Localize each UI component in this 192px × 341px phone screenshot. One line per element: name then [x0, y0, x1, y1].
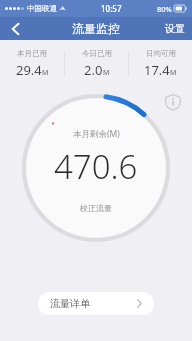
button[interactable]: 流量详单: [38, 292, 154, 315]
staticText: 日均可用: [146, 49, 176, 58]
button[interactable]: 设置: [165, 17, 185, 40]
staticText: 470.6: [54, 144, 138, 189]
button[interactable]: 本月已用: [0, 49, 64, 79]
staticText: 校正流量: [80, 203, 112, 213]
staticText: 本月已用: [17, 49, 47, 58]
staticText: 流量监控: [72, 21, 120, 36]
button[interactable]: 今日已用: [65, 49, 128, 79]
staticText: 29.4: [16, 61, 42, 79]
staticText: M: [42, 68, 49, 78]
staticText: 80%: [157, 4, 172, 14]
button[interactable]: Back: [0, 17, 30, 40]
staticText: 17.4: [144, 61, 170, 79]
staticText: M: [103, 68, 110, 78]
staticText: 中国联通: [27, 4, 57, 13]
staticText: 设置: [165, 22, 185, 35]
staticText: 本月剩余(M): [73, 128, 120, 140]
staticText: 2.0: [84, 61, 103, 79]
staticText: 流量详单: [50, 297, 90, 310]
staticText: 今日已用: [82, 49, 112, 58]
staticText: M: [170, 68, 177, 78]
button[interactable]: 本月剩余(M): [54, 124, 138, 213]
staticText: 10:57: [101, 3, 122, 14]
button[interactable]: Info: [164, 93, 182, 111]
button[interactable]: 日均可用: [129, 49, 192, 79]
